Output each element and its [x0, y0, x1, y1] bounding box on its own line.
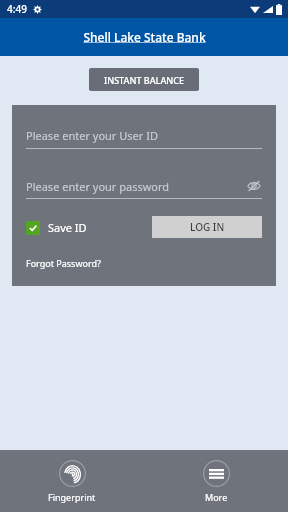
- button[interactable]: INSTANT BALANCE: [89, 68, 199, 91]
- staticText: LOG IN: [190, 220, 225, 234]
- staticText: INSTANT BALANCE: [104, 74, 185, 86]
- staticText: Fingerprint: [48, 491, 96, 503]
- button[interactable]: Please enter your password: [26, 179, 246, 194]
- staticText: More: [205, 491, 228, 503]
- button[interactable]: Forgot Password?: [26, 257, 101, 269]
- button[interactable]: Save ID: [26, 220, 87, 235]
- button[interactable]: Show password: [246, 178, 262, 194]
- button[interactable]: Shell Lake State Bank: [83, 29, 206, 45]
- staticText: Please enter your User ID: [26, 128, 158, 143]
- button[interactable]: LOG IN: [152, 216, 262, 238]
- button[interactable]: Fingerprint login: [38, 457, 106, 506]
- staticText: Save ID: [48, 220, 87, 235]
- staticText: 4:49: [7, 2, 27, 16]
- button[interactable]: Please enter your User ID: [26, 128, 262, 149]
- button[interactable]: More options: [193, 457, 240, 506]
